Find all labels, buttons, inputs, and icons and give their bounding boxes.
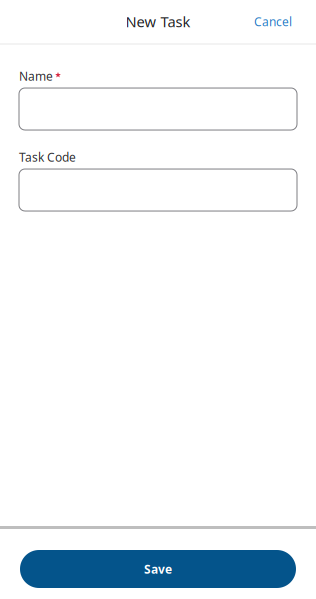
button[interactable]: Task Code: [19, 169, 297, 211]
staticText: Task Code: [19, 149, 76, 165]
staticText: Name: [19, 68, 53, 84]
button[interactable]: Cancel: [238, 2, 316, 40]
button[interactable]: Name: [19, 88, 297, 130]
button[interactable]: Save: [20, 550, 296, 588]
staticText: Cancel: [254, 13, 292, 29]
staticText: Save: [144, 561, 172, 577]
staticText: New Task: [125, 12, 190, 31]
